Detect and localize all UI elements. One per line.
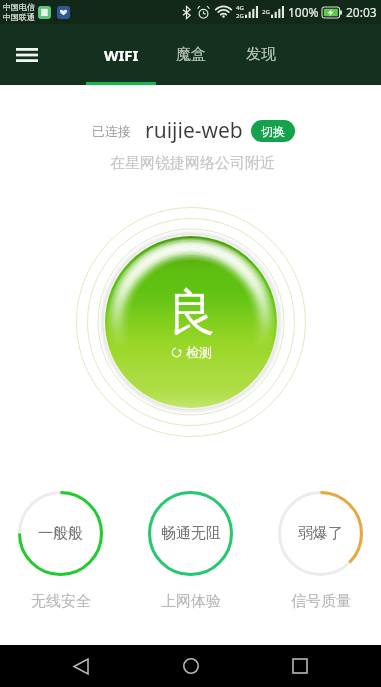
- staticText: 无线安全: [31, 592, 91, 611]
- button[interactable]: Menu: [0, 24, 54, 85]
- staticText: 弱爆了: [298, 524, 343, 543]
- button[interactable]: WIFI: [86, 24, 156, 85]
- staticText: 中国联通: [3, 12, 35, 22]
- button[interactable]: Home: [163, 645, 219, 687]
- button[interactable]: 弱爆了: [278, 491, 363, 576]
- staticText: 中国电信: [3, 2, 35, 12]
- staticText: 信号质量: [291, 592, 351, 611]
- staticText: 已连接: [92, 123, 131, 139]
- button[interactable]: 魔盒: [156, 24, 226, 85]
- button[interactable]: 一般般: [18, 491, 103, 576]
- staticText: 良: [167, 282, 216, 344]
- button[interactable]: 发现: [226, 24, 296, 85]
- button[interactable]: 畅通无阻: [148, 491, 233, 576]
- staticText: 检测: [186, 344, 212, 360]
- staticText: 在星网锐捷网络公司附近: [110, 154, 275, 173]
- staticText: 100%: [288, 4, 319, 20]
- staticText: ruijie-web: [145, 116, 243, 145]
- button[interactable]: 切换: [251, 120, 295, 142]
- staticText: 20:03: [346, 4, 377, 20]
- staticText: 一般般: [38, 524, 83, 543]
- staticText: 2G: [236, 12, 244, 20]
- staticText: WIFI: [104, 45, 139, 65]
- staticText: 上网体验: [161, 592, 221, 611]
- staticText: 发现: [246, 45, 276, 64]
- staticText: 4G: [236, 4, 244, 12]
- button[interactable]: Back: [53, 645, 109, 687]
- staticText: 魔盒: [176, 45, 206, 64]
- staticText: 切换: [261, 124, 285, 139]
- button[interactable]: Recents: [272, 645, 328, 687]
- staticText: 畅通无阻: [161, 524, 221, 543]
- staticText: 2G: [262, 8, 270, 16]
